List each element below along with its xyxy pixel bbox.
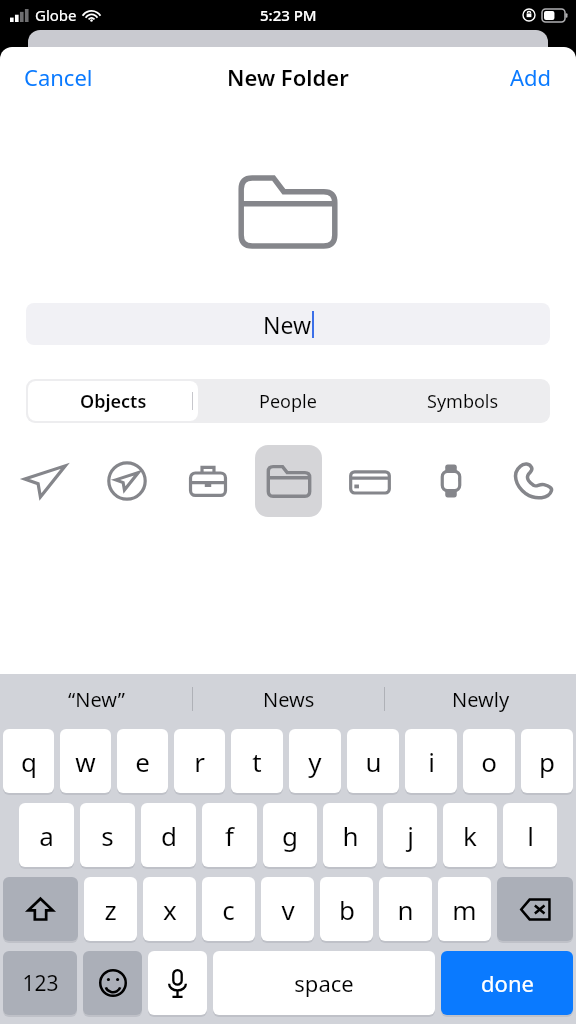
button[interactable]: h <box>323 803 377 867</box>
staticText: f <box>225 818 234 853</box>
staticText: s <box>101 818 114 853</box>
staticText: a <box>39 818 54 853</box>
button[interactable]: n <box>379 877 432 941</box>
button[interactable]: i <box>405 729 457 793</box>
staticText: r <box>194 744 205 779</box>
staticText: k <box>463 818 477 853</box>
staticText: q <box>21 744 37 779</box>
staticText: m <box>452 892 477 927</box>
staticText: New Folder <box>227 62 349 92</box>
button[interactable]: q <box>3 729 54 793</box>
other: Shift <box>3 877 78 941</box>
button[interactable]: Briefcase <box>174 445 241 517</box>
button[interactable]: g <box>263 803 317 867</box>
button[interactable]: Credit card <box>336 445 403 517</box>
button[interactable]: “New” <box>0 674 192 724</box>
staticText: New <box>263 309 312 340</box>
staticText: v <box>281 892 295 927</box>
button[interactable]: Compass <box>93 445 160 517</box>
staticText: 123 <box>22 969 59 998</box>
staticText: e <box>135 744 150 779</box>
button[interactable]: l <box>503 803 557 867</box>
staticText: u <box>365 744 382 779</box>
staticText: c <box>222 892 235 927</box>
staticText: Add <box>510 62 552 92</box>
staticText: n <box>397 892 414 927</box>
button[interactable]: j <box>383 803 437 867</box>
button[interactable]: done <box>441 951 573 1015</box>
button[interactable]: r <box>174 729 225 793</box>
button[interactable]: u <box>347 729 399 793</box>
staticText: d <box>161 818 177 853</box>
button[interactable]: c <box>202 877 255 941</box>
button[interactable]: e <box>117 729 168 793</box>
button[interactable]: x <box>143 877 196 941</box>
other: Dictate <box>148 951 207 1015</box>
button[interactable]: s <box>80 803 135 867</box>
button[interactable]: Cancel <box>0 52 117 102</box>
staticText: p <box>539 744 555 779</box>
button[interactable]: f <box>202 803 257 867</box>
button[interactable] <box>3 877 78 941</box>
staticText: done <box>481 968 534 998</box>
button[interactable]: a <box>19 803 74 867</box>
button[interactable]: Objects <box>28 381 198 421</box>
other: Emoji <box>83 951 142 1015</box>
staticText: i <box>428 744 435 779</box>
button[interactable]: Add <box>486 52 576 102</box>
staticText: Globe <box>35 5 77 25</box>
staticText: News <box>263 686 315 713</box>
button[interactable]: People <box>202 381 373 421</box>
button[interactable]: w <box>60 729 111 793</box>
staticText: 5:23 PM <box>260 5 317 25</box>
other: Backspace <box>497 877 573 941</box>
staticText: Objects <box>80 389 147 414</box>
staticText: Cancel <box>24 62 93 92</box>
staticText: b <box>339 892 355 927</box>
button[interactable]: z <box>84 877 137 941</box>
button[interactable]: News <box>193 674 384 724</box>
button[interactable] <box>148 951 207 1015</box>
staticText: People <box>259 389 317 414</box>
button[interactable]: m <box>438 877 491 941</box>
staticText: t <box>252 744 262 779</box>
staticText: l <box>527 818 534 853</box>
staticText: Newly <box>452 686 510 713</box>
button[interactable]: o <box>463 729 515 793</box>
button[interactable]: Symbols <box>377 381 548 421</box>
button[interactable]: v <box>261 877 314 941</box>
button[interactable]: k <box>443 803 497 867</box>
button[interactable] <box>497 877 573 941</box>
staticText: j <box>407 818 414 853</box>
button[interactable]: t <box>231 729 283 793</box>
button[interactable]: New <box>26 303 550 345</box>
staticText: x <box>163 892 177 927</box>
button[interactable]: p <box>521 729 573 793</box>
button[interactable]: y <box>289 729 341 793</box>
staticText: g <box>282 818 298 853</box>
button[interactable]: Watch <box>417 445 484 517</box>
button[interactable]: Newly <box>385 674 576 724</box>
button[interactable]: d <box>141 803 196 867</box>
staticText: o <box>481 744 497 779</box>
button[interactable] <box>83 951 142 1015</box>
button[interactable]: Folder <box>255 445 322 517</box>
staticText: space <box>294 968 354 998</box>
staticText: w <box>75 744 96 779</box>
button[interactable]: Phone <box>498 445 565 517</box>
staticText: “New” <box>68 686 125 713</box>
button[interactable]: 123 <box>3 951 77 1015</box>
staticText: Symbols <box>427 389 499 414</box>
staticText: z <box>104 892 117 927</box>
staticText: h <box>342 818 359 853</box>
button[interactable]: space <box>213 951 435 1015</box>
button[interactable]: Paper plane <box>11 445 79 517</box>
staticText: y <box>308 744 322 779</box>
button[interactable]: b <box>320 877 373 941</box>
